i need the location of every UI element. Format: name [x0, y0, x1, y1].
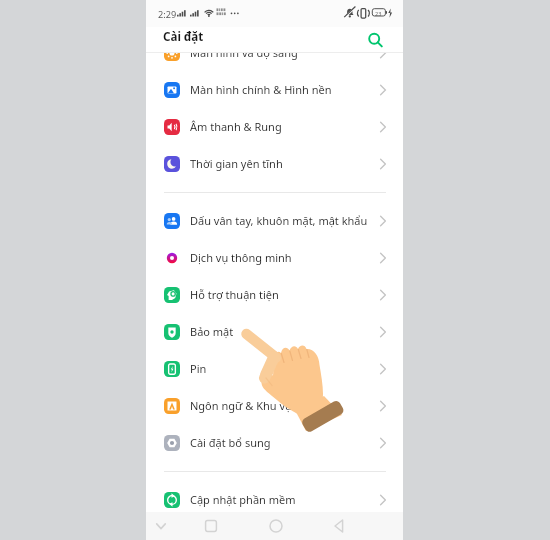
button[interactable]: Cài đặt bổ sung — [146, 424, 403, 461]
staticText: Bảo mật — [190, 324, 375, 339]
staticText: Thời gian yên tĩnh — [190, 156, 375, 171]
button[interactable]: Recent apps — [198, 513, 224, 539]
button[interactable]: Hide keyboard — [148, 513, 174, 539]
staticText: Pin — [190, 361, 375, 376]
button[interactable]: Màn hình chính & Hình nền — [146, 71, 403, 108]
button[interactable]: Back — [326, 513, 352, 539]
button[interactable]: Cập nhật phần mềm — [146, 481, 403, 518]
button[interactable]: Dịch vụ thông minh — [146, 239, 403, 276]
staticText: Dịch vụ thông minh — [190, 250, 375, 265]
staticText: Màn hình chính & Hình nền — [190, 82, 375, 97]
button[interactable]: Search — [363, 28, 387, 52]
button[interactable]: Bảo mật — [146, 313, 403, 350]
button[interactable]: Âm thanh & Rung — [146, 108, 403, 145]
button[interactable]: Hỗ trợ thuận tiện — [146, 276, 403, 313]
staticText: 23 — [375, 10, 382, 18]
staticText: Màn hình và độ sáng — [190, 53, 375, 60]
button[interactable]: Thời gian yên tĩnh — [146, 145, 403, 182]
staticText: Dấu vân tay, khuôn mặt, mật khẩu — [190, 213, 375, 228]
staticText: 2:29 — [158, 8, 177, 21]
button[interactable]: Dấu vân tay, khuôn mặt, mật khẩu — [146, 202, 403, 239]
button[interactable]: Ngôn ngữ & Khu vực — [146, 387, 403, 424]
button[interactable]: Pin — [146, 350, 403, 387]
button[interactable]: Home — [263, 513, 289, 539]
staticText: Cài đặt bổ sung — [190, 435, 375, 450]
staticText: Cài đặt — [163, 29, 204, 45]
button[interactable]: Màn hình và độ sáng — [146, 53, 403, 71]
staticText: Cập nhật phần mềm — [190, 492, 375, 507]
staticText: Hỗ trợ thuận tiện — [190, 287, 375, 302]
staticText: Âm thanh & Rung — [190, 119, 375, 134]
staticText: Ngôn ngữ & Khu vực — [190, 398, 375, 413]
